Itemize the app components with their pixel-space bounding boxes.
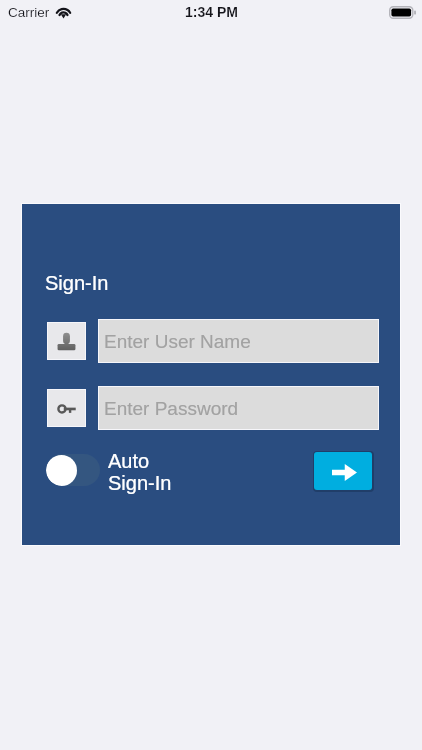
button[interactable]: Auto Sign-In toggle xyxy=(46,454,100,486)
staticText: Carrier xyxy=(8,5,50,20)
staticText: Enter Password xyxy=(104,398,239,419)
staticText: Enter User Name xyxy=(104,331,251,352)
staticText: Sign-In xyxy=(45,272,109,294)
button[interactable]: Sign in xyxy=(314,452,372,490)
staticText: 1:34 PM xyxy=(185,4,238,20)
staticText: Auto Sign-In xyxy=(108,450,172,494)
button[interactable]: Enter User Name xyxy=(99,320,378,362)
button[interactable]: Enter Password xyxy=(99,387,378,429)
